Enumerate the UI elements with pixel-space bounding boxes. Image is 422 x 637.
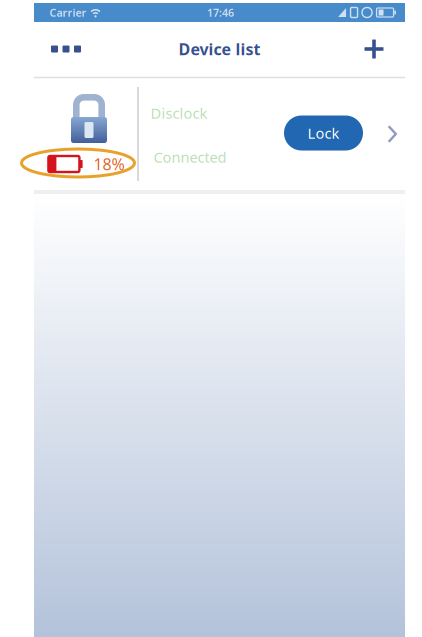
- button[interactable]: Add device: [344, 24, 404, 74]
- staticText: Device list: [178, 38, 260, 60]
- staticText: Carrier: [49, 5, 86, 20]
- button[interactable]: Lock: [284, 115, 363, 150]
- staticText: 18%: [94, 153, 125, 175]
- staticText: Disclock: [150, 103, 207, 123]
- staticText: 17:46: [207, 5, 234, 20]
- staticText: Connected: [153, 147, 226, 167]
- button[interactable]: More options: [34, 24, 98, 74]
- button[interactable]: Device details: [380, 114, 404, 154]
- staticText: Lock: [307, 123, 339, 143]
